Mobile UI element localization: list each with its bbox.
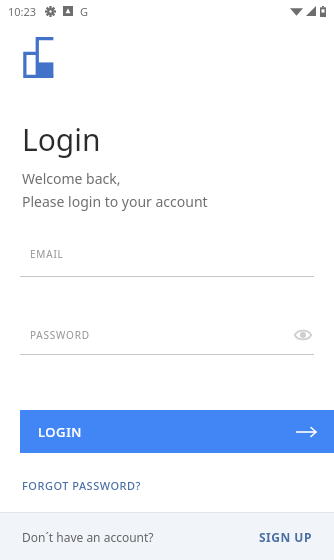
staticText: 10:23 <box>8 4 37 19</box>
button[interactable]: FORGOT PASSWORD? <box>22 478 141 493</box>
button[interactable]: SIGN UP <box>259 529 312 545</box>
staticText: EMAIL <box>30 247 64 261</box>
staticText: Don´t have an account? <box>22 529 259 545</box>
button[interactable]: PASSWORD <box>20 324 314 355</box>
staticText: Login <box>22 119 101 160</box>
staticText: Please login to your account <box>22 192 208 211</box>
button[interactable]: EMAIL <box>20 247 314 277</box>
staticText: FORGOT PASSWORD? <box>22 478 141 493</box>
staticText: SIGN UP <box>259 529 312 545</box>
button[interactable]: Show password <box>292 324 314 346</box>
staticText: Welcome back, <box>22 169 121 188</box>
staticText: PASSWORD <box>30 328 292 342</box>
staticText: LOGIN <box>38 423 296 441</box>
button[interactable]: LOGIN <box>20 410 334 453</box>
staticText: G <box>80 4 89 19</box>
